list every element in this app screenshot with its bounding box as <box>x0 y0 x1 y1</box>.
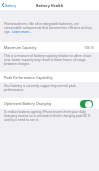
staticText: age. <box>4 30 12 34</box>
button[interactable]: Maximum Capacity <box>0 42 99 52</box>
button[interactable]: Battery <box>0 2 19 8</box>
staticText: consumable components that become less e… <box>4 26 92 30</box>
staticText: Optimised Battery Charging <box>4 101 52 106</box>
button[interactable]: Learn more... <box>12 30 32 34</box>
button[interactable]: Optimised Battery Charging <box>0 98 99 109</box>
staticText: Battery Health <box>36 3 64 8</box>
staticText: Peak Performance Capability <box>4 75 53 80</box>
staticText: Your battery is currently supporting nor… <box>4 84 76 88</box>
staticText: Phone batteries, like all rechargeable b… <box>4 22 79 26</box>
staticText: between charges. <box>4 62 31 66</box>
staticText: To reduce battery ageing, iPhone learns … <box>4 110 86 114</box>
staticText: until you need to use it. <box>4 118 39 122</box>
staticText: charging routine so it can wait to finis… <box>4 114 91 118</box>
staticText: new. Lower capacity may result in fewer … <box>4 58 86 62</box>
staticText: 100 % <box>84 45 95 50</box>
button[interactable]: Optimised Battery Charging <box>80 100 93 108</box>
button[interactable]: Peak Performance Capability <box>0 72 99 82</box>
staticText: Battery <box>5 3 17 7</box>
staticText: This is a measure of battery capacity re… <box>4 54 92 58</box>
staticText: Maximum Capacity <box>4 45 37 50</box>
staticText: performance. <box>4 88 25 92</box>
